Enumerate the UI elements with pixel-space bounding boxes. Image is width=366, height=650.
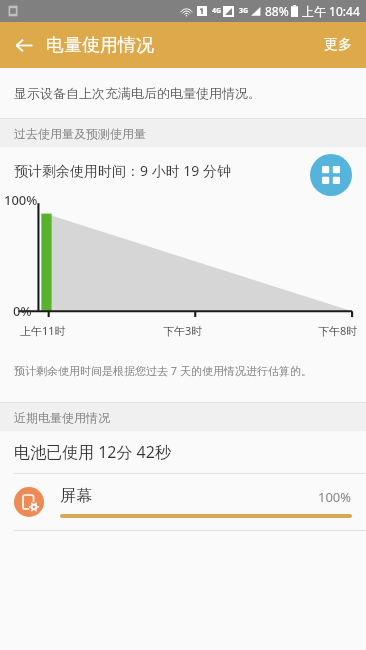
button[interactable]: 屏幕 bbox=[0, 474, 366, 530]
button[interactable]: App list bbox=[310, 154, 352, 196]
staticText: 更多 bbox=[324, 36, 352, 54]
staticText: 88% bbox=[265, 3, 289, 19]
staticText: 电池已使用 12分 42秒 bbox=[14, 441, 171, 463]
staticText: 预计剩余使用时间：9 小时 19 分钟 bbox=[14, 161, 231, 180]
staticText: 4G bbox=[212, 6, 222, 16]
staticText: 0% bbox=[13, 302, 32, 320]
staticText: 下午3时 bbox=[163, 323, 203, 338]
staticText: 屏幕 bbox=[60, 486, 318, 506]
staticText: 3G bbox=[239, 6, 249, 16]
staticText: 上午 10:44 bbox=[302, 3, 360, 19]
staticText: 预计剩余使用时间是根据您过去 7 天的使用情况进行估算的。 bbox=[14, 363, 313, 378]
button[interactable]: 更多 bbox=[310, 26, 366, 64]
staticText: 电量使用情况 bbox=[46, 34, 154, 57]
staticText: 上午11时 bbox=[20, 323, 66, 338]
staticText: 显示设备自上次充满电后的电量使用情况。 bbox=[14, 85, 261, 101]
button[interactable]: Back bbox=[4, 25, 44, 65]
staticText: 近期电量使用情况 bbox=[14, 410, 110, 425]
staticText: 100% bbox=[318, 488, 352, 506]
staticText: 下午8时 bbox=[318, 323, 358, 338]
staticText: 100% bbox=[4, 191, 38, 209]
staticText: 过去使用量及预测使用量 bbox=[14, 126, 146, 141]
